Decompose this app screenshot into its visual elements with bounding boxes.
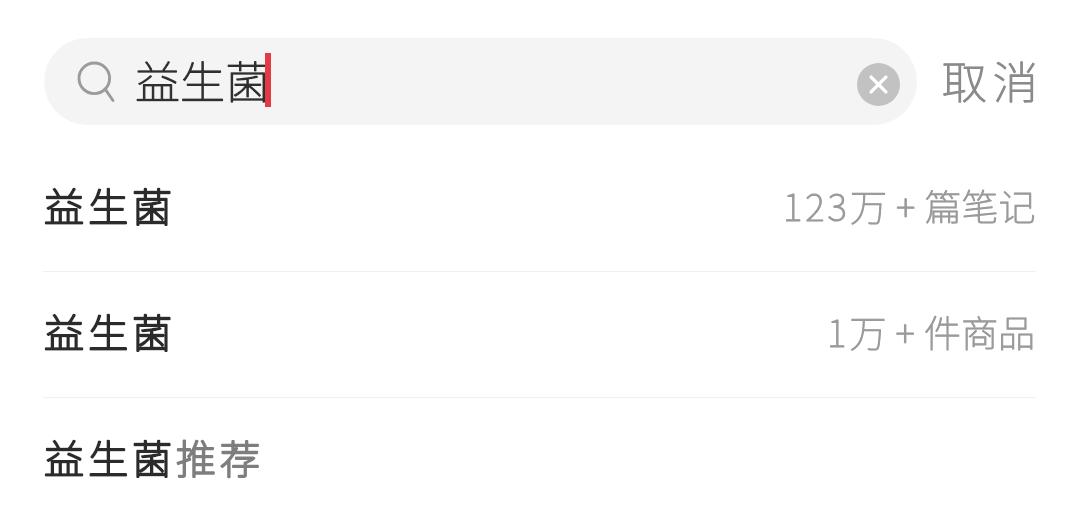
button[interactable]: Search xyxy=(44,38,917,125)
staticText: 益生菌 xyxy=(44,302,176,360)
staticText: 益生菌 xyxy=(44,302,176,360)
staticText: 益生菌 xyxy=(135,47,271,112)
staticText: 取消 xyxy=(942,47,1045,112)
staticText: 益生菌 xyxy=(44,176,176,234)
button[interactable]: 益生菌推荐 xyxy=(0,398,1080,523)
button[interactable]: 益生菌 xyxy=(0,146,1080,271)
button[interactable]: 取消 xyxy=(942,38,1045,125)
staticText: 益生菌 xyxy=(135,47,271,112)
staticText: 1万 + 件商品 xyxy=(827,304,1036,358)
button[interactable]: Clear search text xyxy=(857,63,900,106)
staticText: 益生菌推荐 xyxy=(44,428,264,486)
staticText: 益生菌 xyxy=(44,176,176,234)
button[interactable]: 益生菌 xyxy=(0,272,1080,397)
staticText: 123万 + 篇笔记 xyxy=(783,178,1036,232)
staticText: 取消 xyxy=(942,47,1045,112)
other: Search xyxy=(76,61,118,103)
staticText: 1万 + 件商品 xyxy=(827,304,1036,358)
staticText: 123万 + 篇笔记 xyxy=(783,178,1036,232)
staticText: 益生菌推荐 xyxy=(44,428,264,486)
